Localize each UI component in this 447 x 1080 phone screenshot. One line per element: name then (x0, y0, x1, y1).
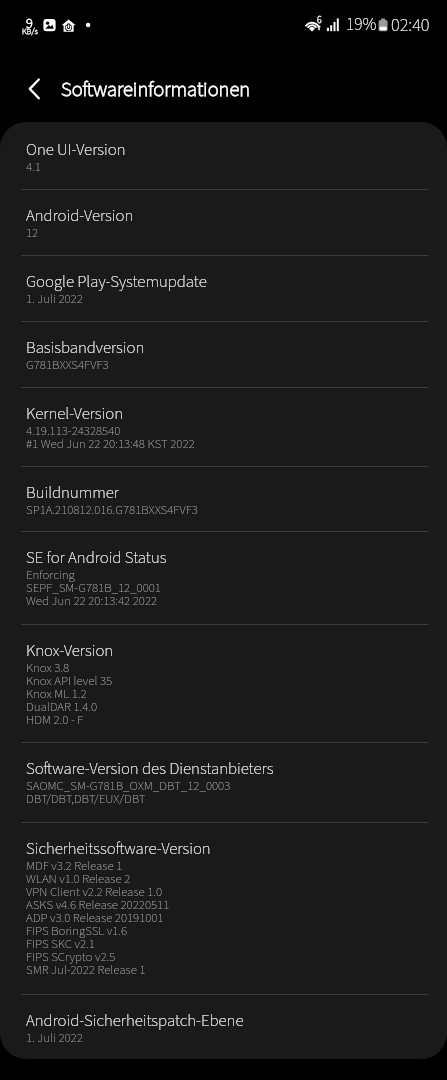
staticText: 9 (26, 13, 33, 33)
staticText: FIPS SKC v2.1 (26, 935, 95, 953)
staticText: #1 Wed Jun 22 20:13:48 KST 2022 (26, 435, 195, 453)
staticText: Knox-Version (26, 639, 114, 663)
staticText: Basisbandversion (26, 336, 145, 360)
staticText: One UI-Version (26, 138, 126, 162)
staticText: G781BXXS4FVF3 (26, 356, 109, 374)
staticText: 19% (346, 12, 377, 37)
staticText: SMR Jul-2022 Release 1 (26, 961, 146, 979)
staticText: ADP v3.0 Release 20191001 (26, 909, 164, 927)
button[interactable]: Buildnummer (0, 467, 447, 532)
staticText: Software-Version des Dienstanbieters (26, 757, 274, 781)
staticText: FIPS SCrypto v2.5 (26, 948, 116, 966)
staticText: Wed Jun 22 20:13:42 2022 (26, 592, 158, 610)
staticText: ASKS v4.6 Release 20220511 (26, 896, 170, 914)
staticText: 4.1 (26, 158, 41, 176)
button[interactable]: SE for Android Status (0, 532, 447, 625)
button[interactable]: Back (8, 63, 52, 107)
staticText: Buildnummer (26, 481, 119, 505)
staticText: SEPF_SM-G781B_12_0001 (26, 579, 161, 597)
staticText: Android-Version (26, 204, 134, 228)
button[interactable]: One UI-Version (0, 124, 447, 190)
button[interactable]: Android-Version (0, 190, 447, 256)
staticText: KB/s (22, 25, 38, 37)
staticText: Kernel-Version (26, 402, 124, 426)
staticText: Knox ML 1.2 (26, 685, 87, 703)
staticText: Enforcing (26, 566, 75, 584)
staticText: DBT/DBT,DBT/EUX/DBT (26, 790, 146, 808)
staticText: Knox API level 35 (26, 672, 113, 690)
staticText: SAOMC_SM-G781B_OXM_DBT_12_0003 (26, 777, 231, 795)
staticText: 4.19.113-24328540 (26, 422, 121, 440)
button[interactable]: Android-Sicherheitspatch-Ebene (0, 995, 447, 1059)
button[interactable]: Knox-Version (0, 625, 447, 743)
staticText: WLAN v1.0 Release 2 (26, 870, 131, 888)
staticText: MDF v3.2 Release 1 (26, 857, 123, 875)
staticText: VPN Client v2.2 Release 1.0 (26, 883, 163, 901)
staticText: Knox 3.8 (26, 659, 70, 677)
button[interactable]: Basisbandversion (0, 322, 447, 388)
staticText: 6 (317, 13, 322, 27)
staticText: HDM 2.0 - F (26, 711, 84, 729)
button[interactable]: Kernel-Version (0, 388, 447, 467)
staticText: FIPS BoringSSL v1.6 (26, 922, 128, 940)
staticText: 1. Juli 2022 (26, 290, 83, 308)
staticText: Google Play-Systemupdate (26, 270, 207, 294)
staticText: DualDAR 1.4.0 (26, 698, 98, 716)
button[interactable]: Google Play-Systemupdate (0, 256, 447, 322)
staticText: SP1A.210812.016.G781BXXS4FVF3 (26, 501, 198, 519)
button[interactable]: Software-Version des Dienstanbieters (0, 743, 447, 823)
staticText: 1. Juli 2022 (26, 1029, 83, 1047)
button[interactable]: Sicherheitssoftware-Version (0, 823, 447, 995)
staticText: Softwareinformationen (61, 75, 251, 104)
staticText: 12 (26, 224, 39, 242)
staticText: 02:40 (391, 12, 430, 38)
staticText: Sicherheitssoftware-Version (26, 837, 211, 861)
staticText: Android-Sicherheitspatch-Ebene (26, 1009, 244, 1033)
staticText: SE for Android Status (26, 546, 167, 570)
